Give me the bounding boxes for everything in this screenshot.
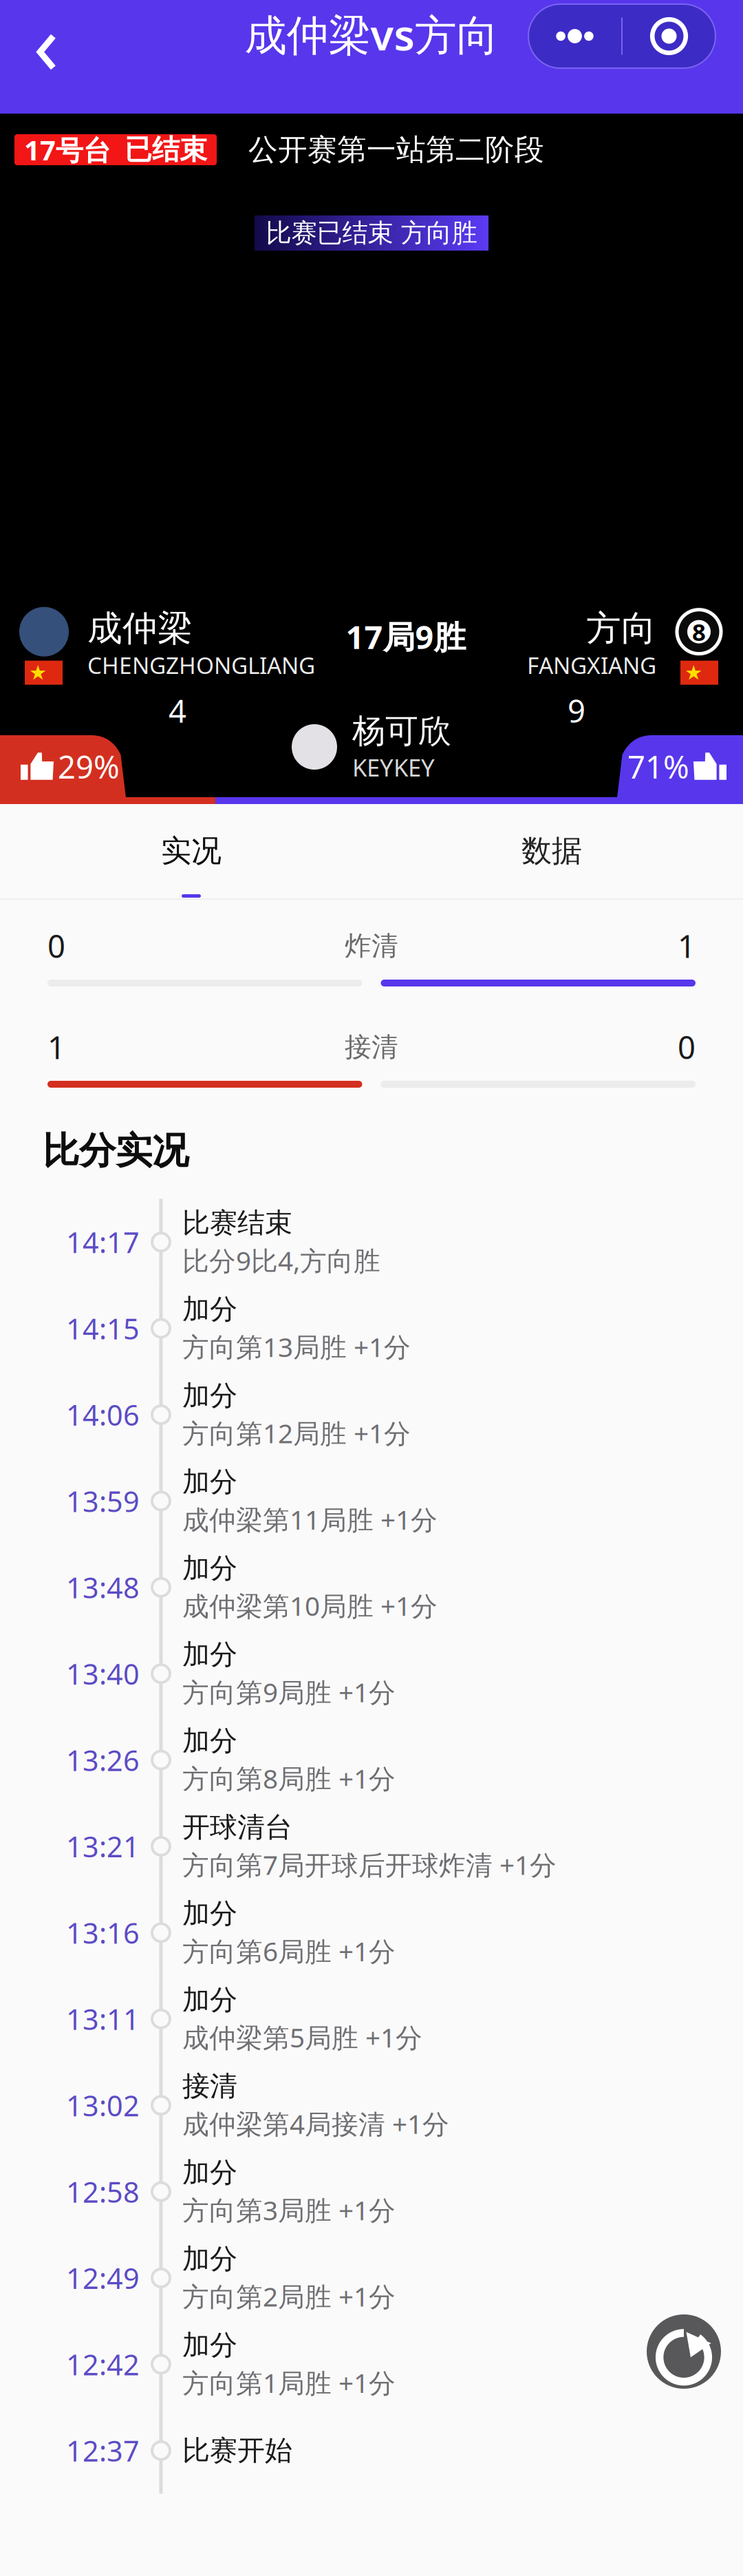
staticText: 成仲梁第5局胜 +1分 <box>182 2020 422 2055</box>
button[interactable]: 数据 <box>371 804 732 901</box>
staticText: 14:17 <box>66 1223 140 1261</box>
staticText: 方向第6局胜 +1分 <box>182 1933 396 1969</box>
staticText: 加分 <box>182 1379 237 1413</box>
staticText: 方向 <box>586 607 656 650</box>
staticText: ★ <box>29 661 47 684</box>
staticText: 13:11 <box>66 2000 140 2038</box>
staticText: 加分 <box>182 1897 237 1930</box>
staticText: 已结束 <box>125 133 207 167</box>
staticText: 成仲梁 <box>87 607 193 650</box>
button[interactable]: Vote 成仲梁 29% <box>0 735 126 798</box>
staticText: 比分实况 <box>43 1128 189 1173</box>
staticText: 加分 <box>182 1551 237 1585</box>
button[interactable]: Close <box>623 4 715 68</box>
staticText: 12:37 <box>66 2432 140 2470</box>
staticText: 方向第13局胜 +1分 <box>182 1329 411 1364</box>
staticText: 比分9比4,方向胜 <box>182 1243 380 1278</box>
staticText: 加分 <box>182 1292 237 1326</box>
button[interactable]: Back <box>10 18 85 86</box>
staticText: 17号台 <box>24 131 111 168</box>
staticText: 14:15 <box>66 1309 140 1347</box>
staticText: 13:26 <box>66 1741 140 1779</box>
button[interactable]: 实况 <box>11 804 371 901</box>
staticText: 4 <box>169 690 186 731</box>
staticText: 加分 <box>182 1638 237 1672</box>
staticText: 比赛结束 <box>182 1206 292 1240</box>
staticText: 加分 <box>182 1983 237 2017</box>
staticText: 8 <box>692 616 706 648</box>
staticText: 方向第1局胜 +1分 <box>182 2365 396 2400</box>
staticText: 9 <box>568 690 585 731</box>
staticText: ★ <box>685 661 702 684</box>
staticText: 加分 <box>182 2328 237 2362</box>
staticText: 17局9胜 <box>346 615 466 658</box>
staticText: 方向第12局胜 +1分 <box>182 1415 411 1451</box>
staticText: 0 <box>678 1026 696 1068</box>
button[interactable]: Refresh <box>647 2314 721 2389</box>
staticText: 29% <box>58 746 120 787</box>
staticText: 方向第2局胜 +1分 <box>182 2279 396 2314</box>
staticText: 13:59 <box>66 1482 140 1520</box>
staticText: 71% <box>627 746 689 787</box>
staticText: 13:40 <box>66 1655 140 1693</box>
staticText: 开球清台 <box>182 1810 292 1844</box>
button[interactable]: More <box>528 4 621 68</box>
staticText: 加分 <box>182 2242 237 2276</box>
staticText: 方向第7局开球后开球炸清 +1分 <box>182 1847 557 1882</box>
staticText: 杨可欣 <box>352 711 451 751</box>
staticText: 接清 <box>345 1031 398 1063</box>
staticText: 0 <box>47 925 65 967</box>
staticText: 12:58 <box>66 2173 140 2211</box>
staticText: FANGXIANG <box>527 650 656 680</box>
staticText: 加分 <box>182 1465 237 1499</box>
staticText: 炸清 <box>345 930 398 962</box>
staticText: 13:21 <box>66 1827 140 1865</box>
staticText: 1 <box>47 1026 65 1068</box>
staticText: 13:02 <box>66 2086 140 2124</box>
staticText: 14:06 <box>66 1396 140 1434</box>
staticText: 加分 <box>182 1724 237 1758</box>
staticText: 方向第8局胜 +1分 <box>182 1761 396 1796</box>
staticText: 实况 <box>161 832 222 869</box>
staticText: 比赛已结束 方向胜 <box>266 217 477 249</box>
staticText: KEYKEY <box>352 751 435 783</box>
staticText: 加分 <box>182 2156 237 2189</box>
staticText: 方向第9局胜 +1分 <box>182 1674 396 1710</box>
staticText: 数据 <box>521 832 582 869</box>
staticText: 12:42 <box>66 2345 140 2383</box>
staticText: 成仲梁第11局胜 +1分 <box>182 1502 438 1537</box>
staticText: 成仲梁vs方向 <box>245 6 498 62</box>
staticText: 12:49 <box>66 2259 140 2297</box>
staticText: 1 <box>678 925 696 967</box>
staticText: 成仲梁第10局胜 +1分 <box>182 1588 438 1623</box>
staticText: 比赛开始 <box>182 2434 292 2467</box>
staticText: 成仲梁第4局接清 +1分 <box>182 2106 449 2141</box>
staticText: 方向第3局胜 +1分 <box>182 2192 396 2228</box>
staticText: 接清 <box>182 2069 237 2103</box>
staticText: 13:16 <box>66 1914 140 1952</box>
staticText: 公开赛第一站第二阶段 <box>248 132 544 168</box>
button[interactable]: Vote 方向 71% <box>617 735 743 798</box>
staticText: CHENGZHONGLIANG <box>87 650 315 680</box>
staticText: 13:48 <box>66 1568 140 1606</box>
